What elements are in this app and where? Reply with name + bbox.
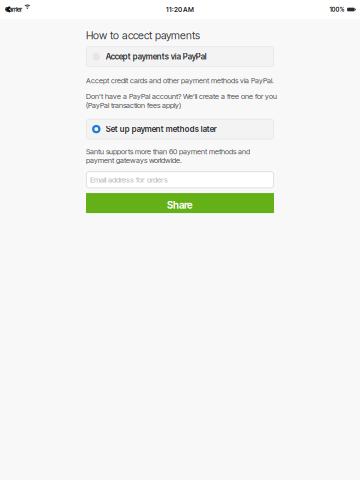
button[interactable]: Email address for orders [86,171,274,188]
staticText: Don’t have a PayPal account? We’ll creat… [86,92,277,110]
staticText: Accept credit cards and other payment me… [86,76,274,85]
staticText: Accept payments via PayPal [106,52,207,62]
staticText: How to accect payments [86,29,200,42]
staticText: Set up payment methods later [106,124,217,134]
button[interactable]: Accept payments via PayPal [86,46,274,67]
button[interactable]: Back [0,0,15,17]
button[interactable]: Share [86,193,274,213]
staticText: 100% [329,6,344,13]
staticText: Share [167,199,193,211]
staticText: Santu supports more than 60 payment meth… [86,147,250,165]
button[interactable]: Set up payment methods later [86,119,274,139]
staticText: Carrier [5,6,22,13]
staticText: Email address for orders [90,175,168,184]
staticText: 11:20 AM [166,5,194,14]
